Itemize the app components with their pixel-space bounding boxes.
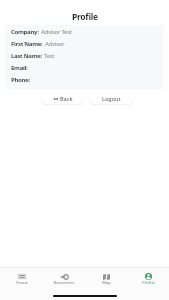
staticText: Logout bbox=[102, 95, 121, 102]
button[interactable]: Home bbox=[0, 273, 43, 286]
staticText: Map bbox=[102, 280, 111, 286]
staticText: Profile bbox=[142, 280, 155, 286]
staticText: Last Name: bbox=[11, 52, 42, 60]
button[interactable]: Profile bbox=[127, 273, 169, 286]
staticText: Advisor Test bbox=[41, 28, 72, 36]
button[interactable]: Map bbox=[85, 273, 127, 286]
staticText: Home bbox=[16, 280, 28, 286]
staticText: Phone: bbox=[11, 76, 30, 84]
staticText: Test bbox=[44, 52, 55, 60]
staticText: Email: bbox=[11, 64, 28, 72]
button[interactable]: Back bbox=[42, 92, 83, 104]
staticText: Back bbox=[60, 95, 73, 102]
staticText: First Name: bbox=[11, 40, 43, 48]
staticText: Profile bbox=[72, 11, 98, 23]
staticText: Barometer bbox=[53, 280, 75, 286]
staticText: Company: bbox=[11, 28, 39, 36]
staticText: Advisor bbox=[45, 40, 65, 48]
button[interactable]: Barometer bbox=[43, 273, 85, 286]
button[interactable]: Logout bbox=[90, 92, 133, 104]
